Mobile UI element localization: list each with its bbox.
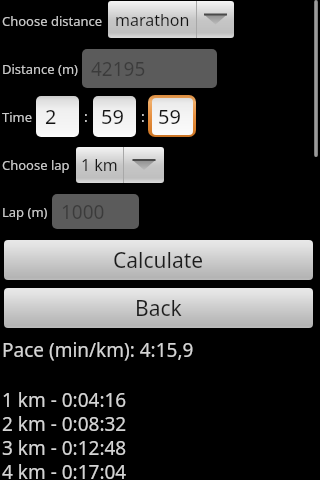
button[interactable]: 2 xyxy=(36,96,79,137)
button[interactable]: 1000 xyxy=(52,194,139,229)
staticText: 1000 xyxy=(61,199,105,225)
staticText: 2 km - 0:08:32 xyxy=(2,411,127,435)
button[interactable]: 42195 xyxy=(82,49,217,88)
staticText: 59 xyxy=(158,103,181,130)
other: Open dropdown xyxy=(197,1,234,38)
staticText: marathon xyxy=(115,9,190,31)
staticText: 1 km xyxy=(81,154,118,176)
button[interactable]: 59 xyxy=(148,95,196,137)
staticText: 59 xyxy=(101,103,124,130)
staticText: Back xyxy=(135,294,182,323)
button[interactable]: 59 xyxy=(93,96,136,137)
staticText: Time xyxy=(2,108,33,126)
button[interactable]: Calculate xyxy=(4,240,313,280)
staticText: Choose lap xyxy=(2,156,70,174)
staticText: Calculate xyxy=(113,246,204,275)
button[interactable]: 1 km xyxy=(76,147,164,183)
other: Open dropdown xyxy=(124,147,164,183)
staticText: : xyxy=(84,107,88,126)
staticText: Distance (m) xyxy=(2,60,78,78)
staticText: Choose distance xyxy=(2,12,103,30)
staticText: : xyxy=(141,107,145,126)
staticText: 1 km - 0:04:16 xyxy=(2,387,127,411)
staticText: Pace (min/km): 4:15,9 xyxy=(2,337,194,363)
staticText: 2 xyxy=(45,103,57,130)
staticText: Lap (m) xyxy=(2,203,48,221)
staticText: 3 km - 0:12:48 xyxy=(2,435,127,459)
staticText: 4 km - 0:17:04 xyxy=(2,459,127,480)
staticText: 42195 xyxy=(91,56,146,82)
button[interactable]: Back xyxy=(4,288,313,328)
button[interactable]: marathon xyxy=(108,1,234,38)
